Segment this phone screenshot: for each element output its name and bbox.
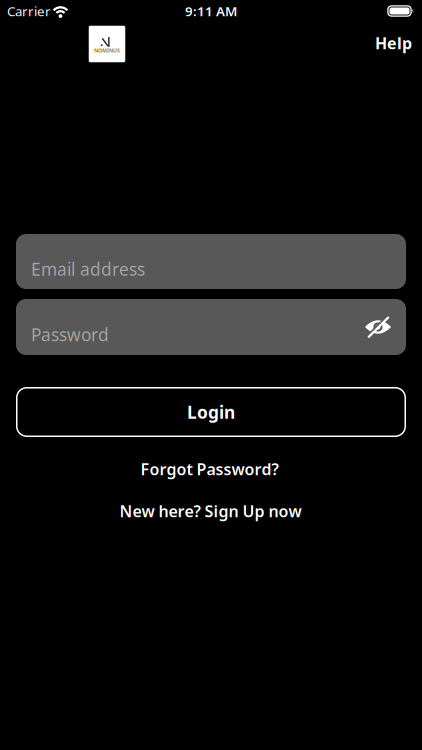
button[interactable]: NOMINUS bbox=[89, 26, 125, 62]
staticText: Login bbox=[187, 400, 235, 423]
button[interactable]: New here? Sign Up now bbox=[119, 500, 301, 522]
staticText: Help bbox=[375, 32, 412, 54]
button[interactable]: Email address bbox=[16, 234, 406, 289]
staticText: Forgot Password? bbox=[140, 458, 278, 480]
button[interactable]: Help bbox=[375, 32, 412, 54]
staticText: Password bbox=[31, 323, 109, 346]
button[interactable]: Password bbox=[16, 299, 406, 355]
staticText: Carrier bbox=[7, 2, 51, 20]
staticText: Email address bbox=[31, 257, 145, 280]
staticText: New here? Sign Up now bbox=[119, 500, 301, 522]
staticText: NOMINUS bbox=[94, 47, 120, 54]
button[interactable]: Login bbox=[16, 387, 406, 437]
button[interactable]: Forgot Password? bbox=[140, 458, 278, 480]
staticText: 9:11 AM bbox=[185, 2, 237, 20]
button[interactable] bbox=[363, 313, 393, 341]
